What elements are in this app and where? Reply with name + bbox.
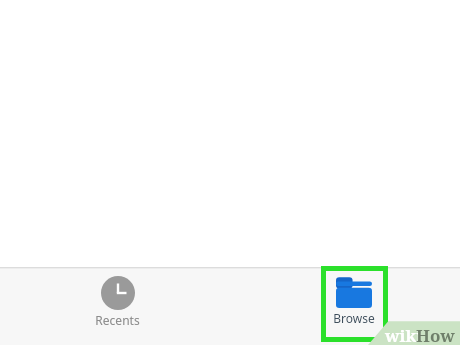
other: Browse tab highlight — [321, 266, 388, 342]
staticText: wiki — [385, 324, 423, 345]
staticText: Browse — [333, 310, 375, 326]
button[interactable]: Recents — [67, 272, 167, 338]
button[interactable]: Browse — [304, 272, 404, 338]
staticText: How — [416, 324, 455, 345]
staticText: Recents — [95, 312, 140, 328]
